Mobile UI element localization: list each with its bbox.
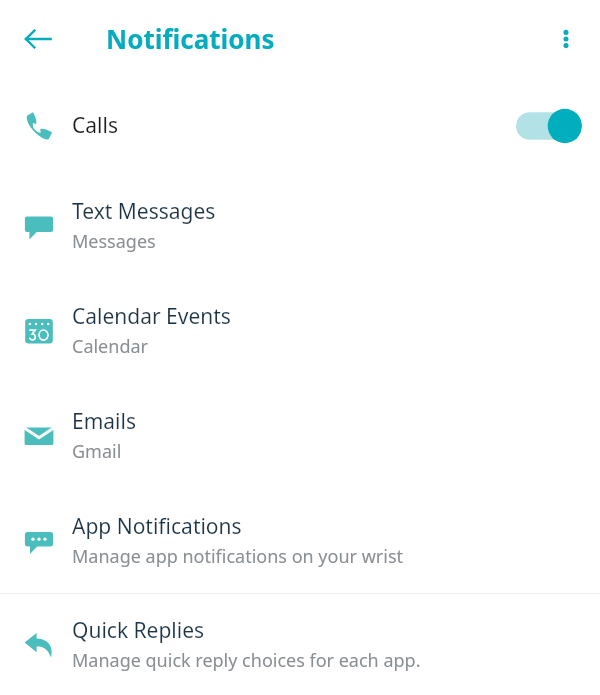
- staticText: Calls: [72, 111, 118, 140]
- button[interactable]: Calls notifications toggle: [516, 104, 582, 148]
- button[interactable]: App Notifications: [0, 488, 600, 593]
- button[interactable]: Calendar Events: [0, 278, 600, 383]
- staticText: Calendar: [72, 334, 148, 359]
- staticText: Calendar Events: [72, 302, 231, 331]
- staticText: Gmail: [72, 439, 122, 464]
- staticText: Manage app notifications on your wrist: [72, 544, 403, 569]
- staticText: Notifications: [106, 21, 275, 56]
- button[interactable]: Back: [12, 13, 64, 65]
- staticText: Emails: [72, 407, 136, 436]
- staticText: App Notifications: [72, 512, 242, 541]
- button[interactable]: Emails: [0, 383, 600, 488]
- button[interactable]: Text Messages: [0, 173, 600, 278]
- staticText: Messages: [72, 229, 156, 254]
- staticText: Quick Replies: [72, 616, 205, 645]
- staticText: Manage quick reply choices for each app.: [72, 648, 421, 673]
- staticText: Text Messages: [72, 197, 216, 226]
- button[interactable]: Quick Replies: [0, 594, 600, 695]
- button[interactable]: Calls: [0, 78, 600, 173]
- button[interactable]: More options: [542, 15, 590, 63]
